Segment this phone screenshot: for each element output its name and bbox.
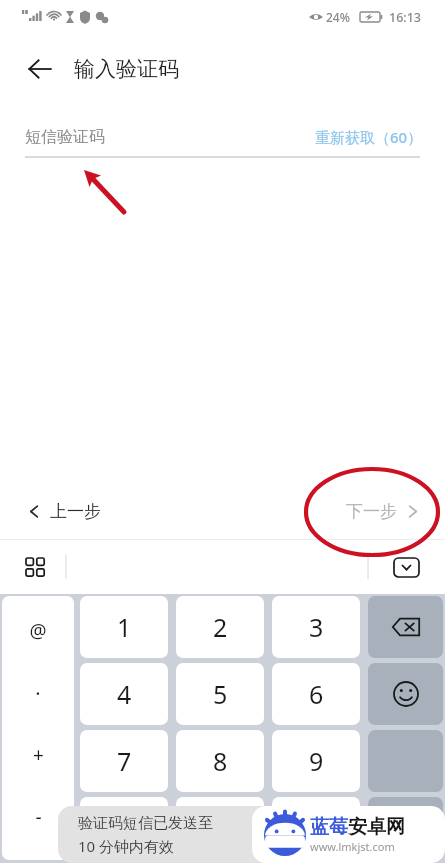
button[interactable]: 上一步 <box>22 495 107 528</box>
button[interactable]: * <box>80 797 168 859</box>
staticText: 安卓网 <box>348 815 405 839</box>
staticText: · <box>35 680 41 707</box>
staticText: 下一步 <box>346 501 397 522</box>
staticText: 重新获取（60） <box>315 127 423 147</box>
staticText: 24% <box>326 9 350 25</box>
button[interactable]: Hide keyboard <box>385 546 427 588</box>
button[interactable]: Emoji <box>368 663 443 725</box>
button[interactable]: 0 <box>176 797 264 859</box>
button[interactable]: Keyboard layouts <box>14 546 56 588</box>
staticText: 短信验证码 <box>25 127 105 147</box>
staticText: 1 <box>117 610 132 644</box>
button[interactable]: # <box>272 797 360 859</box>
button[interactable]: 9 <box>272 730 360 792</box>
staticText: 6 <box>309 677 324 711</box>
staticText: www.lmkjst.com <box>310 839 395 854</box>
staticText: 16:13 <box>389 9 422 26</box>
button[interactable]: 4 <box>80 663 168 725</box>
staticText: + <box>33 742 44 768</box>
button[interactable]: 2 <box>176 596 264 658</box>
button[interactable]: 重新获取（60） <box>315 127 423 147</box>
button[interactable]: 6 <box>272 663 360 725</box>
button[interactable]: 5 <box>176 663 264 725</box>
staticText: * <box>117 811 131 845</box>
staticText: 4 <box>117 677 132 711</box>
button[interactable]: 7 <box>80 730 168 792</box>
staticText: 2 <box>213 610 228 644</box>
button[interactable]: 1 <box>80 596 168 658</box>
staticText: 蓝莓 <box>310 815 348 839</box>
staticText: 上一步 <box>50 501 101 522</box>
staticText: @ <box>29 618 47 644</box>
button[interactable]: Back <box>18 47 62 91</box>
button[interactable]: Enter <box>368 797 443 859</box>
staticText: 3 <box>309 610 324 644</box>
button[interactable]: @ <box>2 596 74 860</box>
staticText: 8 <box>213 744 228 778</box>
staticText: - <box>35 804 42 830</box>
button[interactable]: Symbols <box>368 730 443 792</box>
staticText: 7 <box>117 744 132 778</box>
staticText: 验证码短信已发送至 <box>78 814 213 833</box>
staticText: 5 <box>213 677 228 711</box>
button[interactable]: Backspace <box>368 596 443 658</box>
button[interactable]: 下一步 <box>340 495 425 528</box>
staticText: 10 分钟内有效 <box>78 836 175 856</box>
staticText: 输入验证码 <box>74 56 179 82</box>
button[interactable]: 8 <box>176 730 264 792</box>
staticText: # <box>308 811 325 845</box>
button[interactable]: 3 <box>272 596 360 658</box>
staticText: 9 <box>309 744 324 778</box>
